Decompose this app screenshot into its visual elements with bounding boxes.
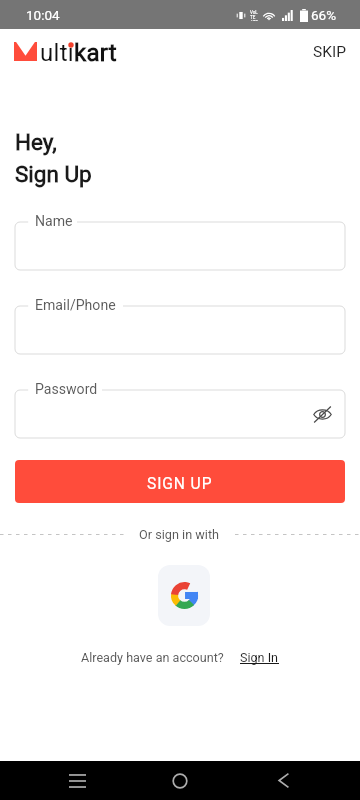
staticText: 66%: [311, 7, 337, 23]
button[interactable]: Sign in with Google: [158, 565, 210, 626]
staticText: Name: [35, 213, 73, 230]
button[interactable]: SIGN UP: [15, 460, 345, 503]
staticText: SKIP: [313, 43, 346, 61]
staticText: Password: [35, 381, 98, 398]
staticText: 10:04: [26, 7, 60, 23]
staticText: LTE: [251, 20, 259, 21]
button[interactable]: SKIP: [293, 33, 360, 71]
staticText: VoLTE: [250, 10, 259, 20]
staticText: Or sign in with: [139, 527, 220, 542]
staticText: SIGN UP: [147, 475, 213, 493]
button[interactable]: Sign In: [240, 650, 279, 665]
button[interactable]: Back: [261, 761, 305, 800]
button[interactable]: Recent apps: [55, 761, 99, 800]
button[interactable]: Home: [158, 761, 202, 800]
button[interactable]: Toggle password visibility: [309, 401, 335, 427]
staticText: kart: [74, 39, 117, 67]
staticText: Email/Phone: [35, 297, 116, 314]
staticText: Sign Up: [15, 161, 92, 187]
staticText: Sign In: [240, 650, 279, 665]
staticText: Hey,: [15, 129, 57, 155]
staticText: ulti: [40, 39, 74, 67]
staticText: Already have an account?: [81, 650, 224, 665]
